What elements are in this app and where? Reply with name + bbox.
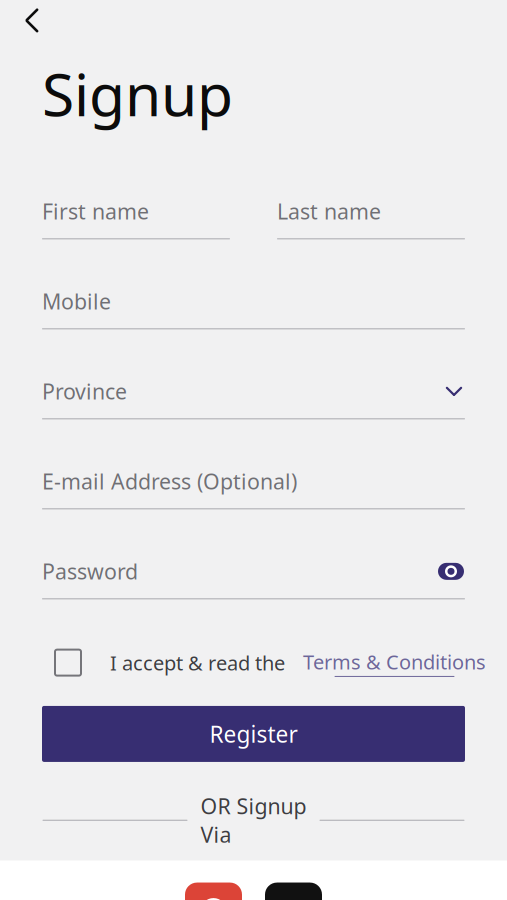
staticText: Province: [42, 377, 127, 405]
staticText: Signup: [42, 54, 233, 132]
button[interactable]: Register: [42, 706, 465, 762]
staticText: E-mail Address (Optional): [42, 467, 297, 495]
staticText: Last name: [277, 197, 381, 225]
button[interactable]: I accept the terms: [55, 650, 81, 676]
staticText: First name: [42, 197, 149, 225]
button[interactable]: Sign up with Google: [185, 883, 242, 900]
staticText: OR Signup Via: [200, 792, 306, 849]
staticText: Mobile: [42, 287, 111, 315]
staticText: I accept & read the: [110, 649, 285, 676]
staticText: Register: [209, 719, 297, 749]
button[interactable]: Terms & Conditions: [303, 648, 486, 677]
button[interactable]: Back: [10, 0, 54, 42]
staticText: Password: [42, 557, 138, 585]
button[interactable]: Sign up with Apple: [265, 883, 322, 900]
staticText: Terms & Conditions: [303, 648, 486, 675]
